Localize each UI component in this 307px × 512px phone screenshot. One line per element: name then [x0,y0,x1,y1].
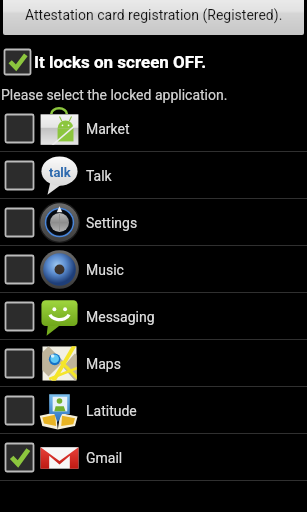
button[interactable]: It locks on screen OFF. [3,48,307,76]
staticText: Gmail [86,450,123,466]
staticText: Messaging [86,309,155,325]
staticText: Attestation card registration (Registere… [25,7,283,23]
staticText: Market [86,121,130,137]
button[interactable]: talk [0,152,307,199]
staticText: Maps [86,356,121,372]
staticText: Talk [86,168,112,184]
staticText: Music [86,262,124,278]
button[interactable]: Market [0,105,307,152]
staticText: talk [49,165,71,180]
button[interactable]: Gmail [0,434,307,481]
button[interactable]: Messaging [0,293,307,340]
staticText: Please select the locked application. [1,87,228,103]
button[interactable]: Latitude [0,387,307,434]
button[interactable]: Attestation card registration (Registere… [3,0,304,35]
staticText: Latitude [86,403,137,419]
button[interactable]: Maps [0,340,307,387]
button[interactable]: Settings [0,199,307,246]
staticText: It locks on screen OFF. [34,52,207,72]
staticText: Settings [86,215,138,231]
button[interactable]: Music [0,246,307,293]
